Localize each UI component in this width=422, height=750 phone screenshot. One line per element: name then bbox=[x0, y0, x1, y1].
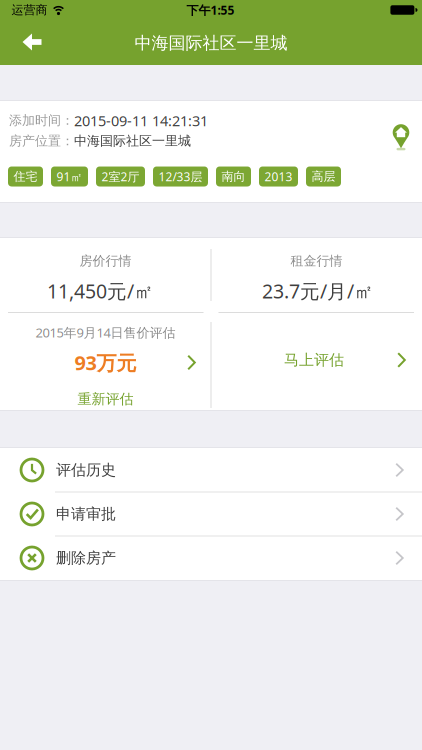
staticText: 运营商 bbox=[11, 2, 47, 17]
staticText: 住宅 bbox=[13, 169, 37, 184]
button[interactable]: 评估历史 bbox=[0, 448, 422, 492]
staticText: 23.7元/月/㎡ bbox=[262, 278, 374, 304]
button[interactable]: 查看位置 bbox=[383, 119, 419, 155]
button[interactable]: 2015年9月14日售价评估 bbox=[0, 312, 211, 410]
button[interactable]: 马上评估 bbox=[211, 312, 422, 410]
staticText: 重新评估 bbox=[77, 390, 133, 408]
staticText: 房产位置： bbox=[9, 133, 74, 149]
staticText: 2015-09-11 14:21:31 bbox=[74, 111, 208, 130]
button[interactable]: 删除房产 bbox=[0, 536, 422, 580]
staticText: 2室2厅 bbox=[101, 168, 139, 185]
staticText: 马上评估 bbox=[284, 351, 344, 369]
staticText: 申请审批 bbox=[56, 505, 116, 523]
staticText: 93万元 bbox=[74, 349, 136, 376]
staticText: 中海国际社区一里城 bbox=[74, 133, 191, 149]
staticText: 房价行情 bbox=[79, 253, 131, 269]
staticText: 12/33层 bbox=[158, 168, 202, 185]
button[interactable]: 返回 bbox=[10, 22, 54, 62]
staticText: 删除房产 bbox=[56, 549, 116, 567]
staticText: 中海国际社区一里城 bbox=[134, 32, 287, 54]
staticText: 高层 bbox=[311, 169, 335, 184]
staticText: 评估历史 bbox=[56, 461, 116, 479]
staticText: 2013 bbox=[264, 168, 292, 185]
staticText: 下午1:55 bbox=[186, 2, 234, 18]
staticText: 添加时间： bbox=[9, 112, 74, 129]
staticText: 2015年9月14日售价评估 bbox=[35, 324, 175, 341]
staticText: 11,450元/㎡ bbox=[47, 278, 154, 304]
button[interactable]: 申请审批 bbox=[0, 492, 422, 536]
staticText: 南向 bbox=[221, 169, 245, 184]
staticText: 91㎡ bbox=[56, 168, 82, 185]
staticText: 租金行情 bbox=[290, 253, 342, 269]
